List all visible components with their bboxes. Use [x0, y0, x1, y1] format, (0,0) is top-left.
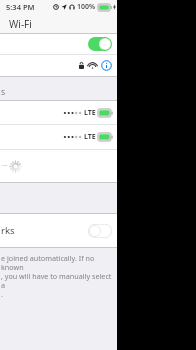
button[interactable]: LTE	[0, 125, 117, 149]
button[interactable]: Toggle off	[88, 224, 112, 238]
other: Loading	[10, 161, 21, 172]
staticText: LTE	[84, 132, 96, 142]
button[interactable]: Toggle on	[88, 37, 112, 51]
button[interactable]: Toggle on	[0, 34, 117, 54]
staticText: 100%	[77, 2, 96, 12]
button[interactable]: ···	[0, 150, 117, 182]
staticText: ···	[2, 161, 8, 171]
staticText: rks	[1, 224, 15, 237]
staticText: Wi-Fi	[9, 17, 32, 31]
staticText: S	[1, 87, 6, 97]
staticText: LTE	[84, 108, 96, 118]
staticText: 5:34 PM	[6, 2, 35, 12]
button[interactable]: LTE	[0, 101, 117, 124]
staticText: e joined automatically. If no known , yo…	[1, 253, 115, 300]
button[interactable]: Secured network	[0, 55, 117, 76]
button[interactable]: More info	[101, 60, 112, 71]
other: Wi-Fi signal	[88, 62, 97, 69]
button[interactable]: rks	[0, 214, 117, 247]
other: Secured network	[79, 62, 84, 69]
